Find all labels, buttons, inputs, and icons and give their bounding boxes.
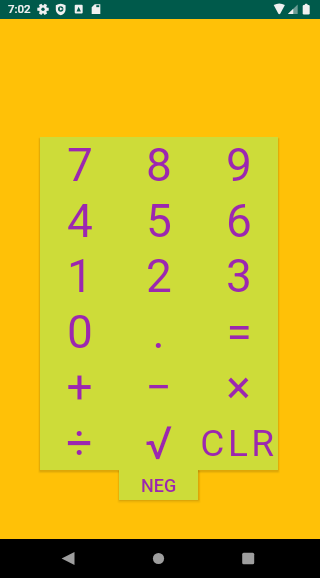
staticText: 4 — [67, 194, 93, 248]
staticText: 0 — [67, 305, 93, 359]
button[interactable]: NEG — [119, 470, 198, 500]
button[interactable]: 1 — [40, 248, 119, 304]
staticText: CLR — [200, 422, 278, 465]
button[interactable]: 7 — [40, 137, 119, 193]
staticText: 7:02 — [8, 2, 31, 15]
button[interactable]: clear — [199, 415, 278, 471]
button[interactable]: equals — [199, 304, 278, 360]
staticText: 1 — [67, 249, 93, 303]
staticText: 7 — [67, 138, 93, 192]
button[interactable]: decimal point — [119, 304, 198, 360]
staticText: NEG — [141, 475, 177, 496]
staticText: = — [226, 305, 252, 359]
button[interactable]: Back — [40, 539, 96, 578]
staticText: 2 — [146, 249, 172, 303]
staticText: − — [145, 360, 172, 414]
button[interactable]: plus — [40, 359, 119, 415]
button[interactable]: 8 — [119, 137, 198, 193]
button[interactable]: 4 — [40, 193, 119, 249]
button[interactable]: multiply — [199, 359, 278, 415]
button[interactable]: 5 — [119, 193, 198, 249]
staticText: 5 — [146, 194, 172, 248]
button[interactable]: minus — [119, 359, 198, 415]
staticText: . — [152, 305, 165, 359]
button[interactable]: square root — [119, 415, 198, 471]
staticText: + — [66, 360, 93, 414]
button[interactable]: 9 — [199, 137, 278, 193]
button[interactable]: divide — [40, 415, 119, 471]
staticText: 8 — [146, 138, 172, 192]
button[interactable]: 0 — [40, 304, 119, 360]
button[interactable]: 6 — [199, 193, 278, 249]
staticText: ÷ — [66, 416, 93, 470]
staticText: √ — [145, 416, 173, 470]
button[interactable]: Home — [130, 539, 186, 578]
button[interactable]: 2 — [119, 248, 198, 304]
staticText: 6 — [226, 194, 252, 248]
staticText: 9 — [226, 138, 252, 192]
button[interactable]: 3 — [199, 248, 278, 304]
button[interactable]: Recent apps — [220, 539, 276, 578]
staticText: 3 — [226, 249, 252, 303]
staticText: × — [226, 360, 251, 414]
